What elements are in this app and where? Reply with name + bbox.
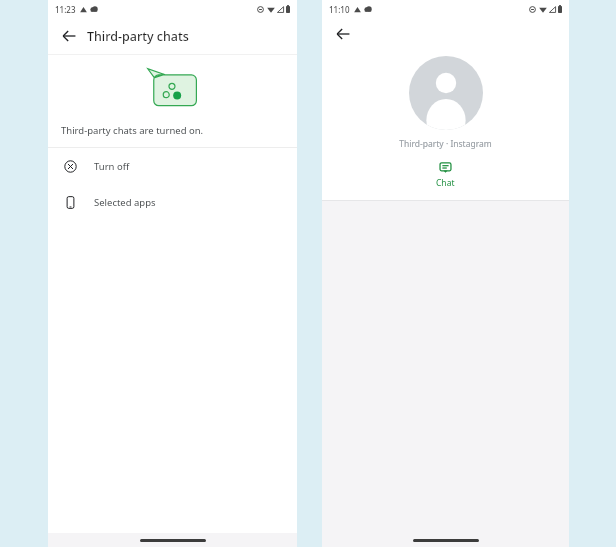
staticText: Third-party · Instagram <box>322 138 569 150</box>
button[interactable]: Turn off <box>48 148 297 184</box>
button[interactable]: Chat <box>424 159 467 191</box>
button[interactable]: Back <box>53 20 85 52</box>
button[interactable]: Selected apps <box>48 184 297 220</box>
staticText: Chat <box>436 177 455 189</box>
staticText: 11:10 <box>329 4 350 15</box>
staticText: Third-party chats are turned on. <box>61 124 204 137</box>
staticText: Selected apps <box>94 196 156 209</box>
staticText: Third-party chats <box>87 28 189 45</box>
button[interactable]: Back <box>327 18 359 50</box>
staticText: 11:23 <box>55 4 76 15</box>
staticText: Turn off <box>94 160 130 173</box>
